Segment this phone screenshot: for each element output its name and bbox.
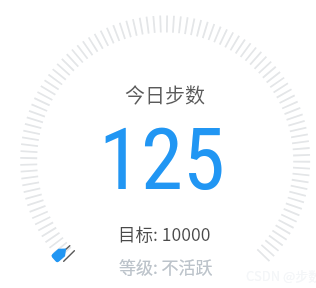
staticText: 125 <box>99 110 225 210</box>
staticText: CSDN @步数 <box>246 266 316 285</box>
staticText: 目标: 10000 <box>118 221 211 246</box>
staticText: 等级: 不活跃 <box>119 254 213 279</box>
staticText: 今日步数 <box>125 80 205 109</box>
button[interactable]: 今日步数 <box>0 0 316 288</box>
